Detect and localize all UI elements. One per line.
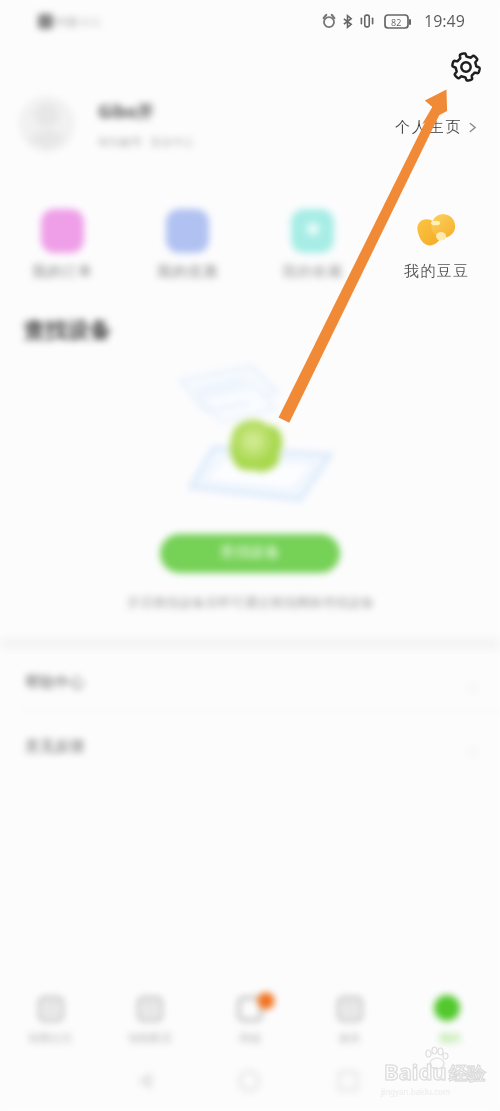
button[interactable] (0, 712, 500, 773)
staticText: 意见反馈 (25, 737, 85, 756)
button[interactable] (300, 982, 400, 1052)
staticText: 帮助中心 (25, 673, 85, 692)
button[interactable]: 个人主页 (392, 114, 481, 141)
staticText: 82 (391, 16, 402, 28)
button[interactable]: 我的豆豆 (403, 206, 471, 284)
staticText: 查找设备 (23, 317, 111, 345)
staticText: 我的 (439, 1031, 461, 1045)
staticText: Baidu (384, 1056, 447, 1086)
staticText: 经验 (449, 1063, 485, 1086)
staticText: 我的收藏 (282, 263, 344, 281)
staticText: 安全中心 (150, 135, 194, 149)
staticText: Gibo开 (98, 100, 154, 123)
staticText: jingyan.baidu.com (381, 1086, 451, 1097)
staticText: 我的豆豆 (404, 262, 470, 281)
staticText: 移动 (79, 15, 101, 29)
staticText: 个人主页 (395, 118, 463, 137)
staticText: 商城 (239, 1031, 261, 1045)
staticText: 19:49 (424, 10, 465, 32)
staticText: 智慧生活 (28, 1031, 72, 1045)
button[interactable] (400, 982, 500, 1052)
staticText: 中国 (55, 15, 77, 29)
staticText: 智能家居 (128, 1031, 172, 1045)
staticText: 开启查找设备后即可通过查找网络寻找设备 (127, 594, 374, 610)
staticText: 华为账号 (98, 135, 142, 149)
button[interactable]: Home (233, 1068, 267, 1102)
button[interactable] (100, 982, 200, 1052)
staticText: 服务 (339, 1031, 361, 1045)
staticText: 我的优惠 (157, 263, 219, 281)
button[interactable] (200, 982, 300, 1052)
button[interactable] (0, 982, 100, 1052)
staticText: 查找设备 (220, 543, 280, 562)
button[interactable]: Settings (447, 48, 485, 86)
button[interactable]: Recents (367, 1068, 401, 1102)
button[interactable] (0, 650, 500, 711)
staticText: 我的订单 (32, 263, 94, 281)
